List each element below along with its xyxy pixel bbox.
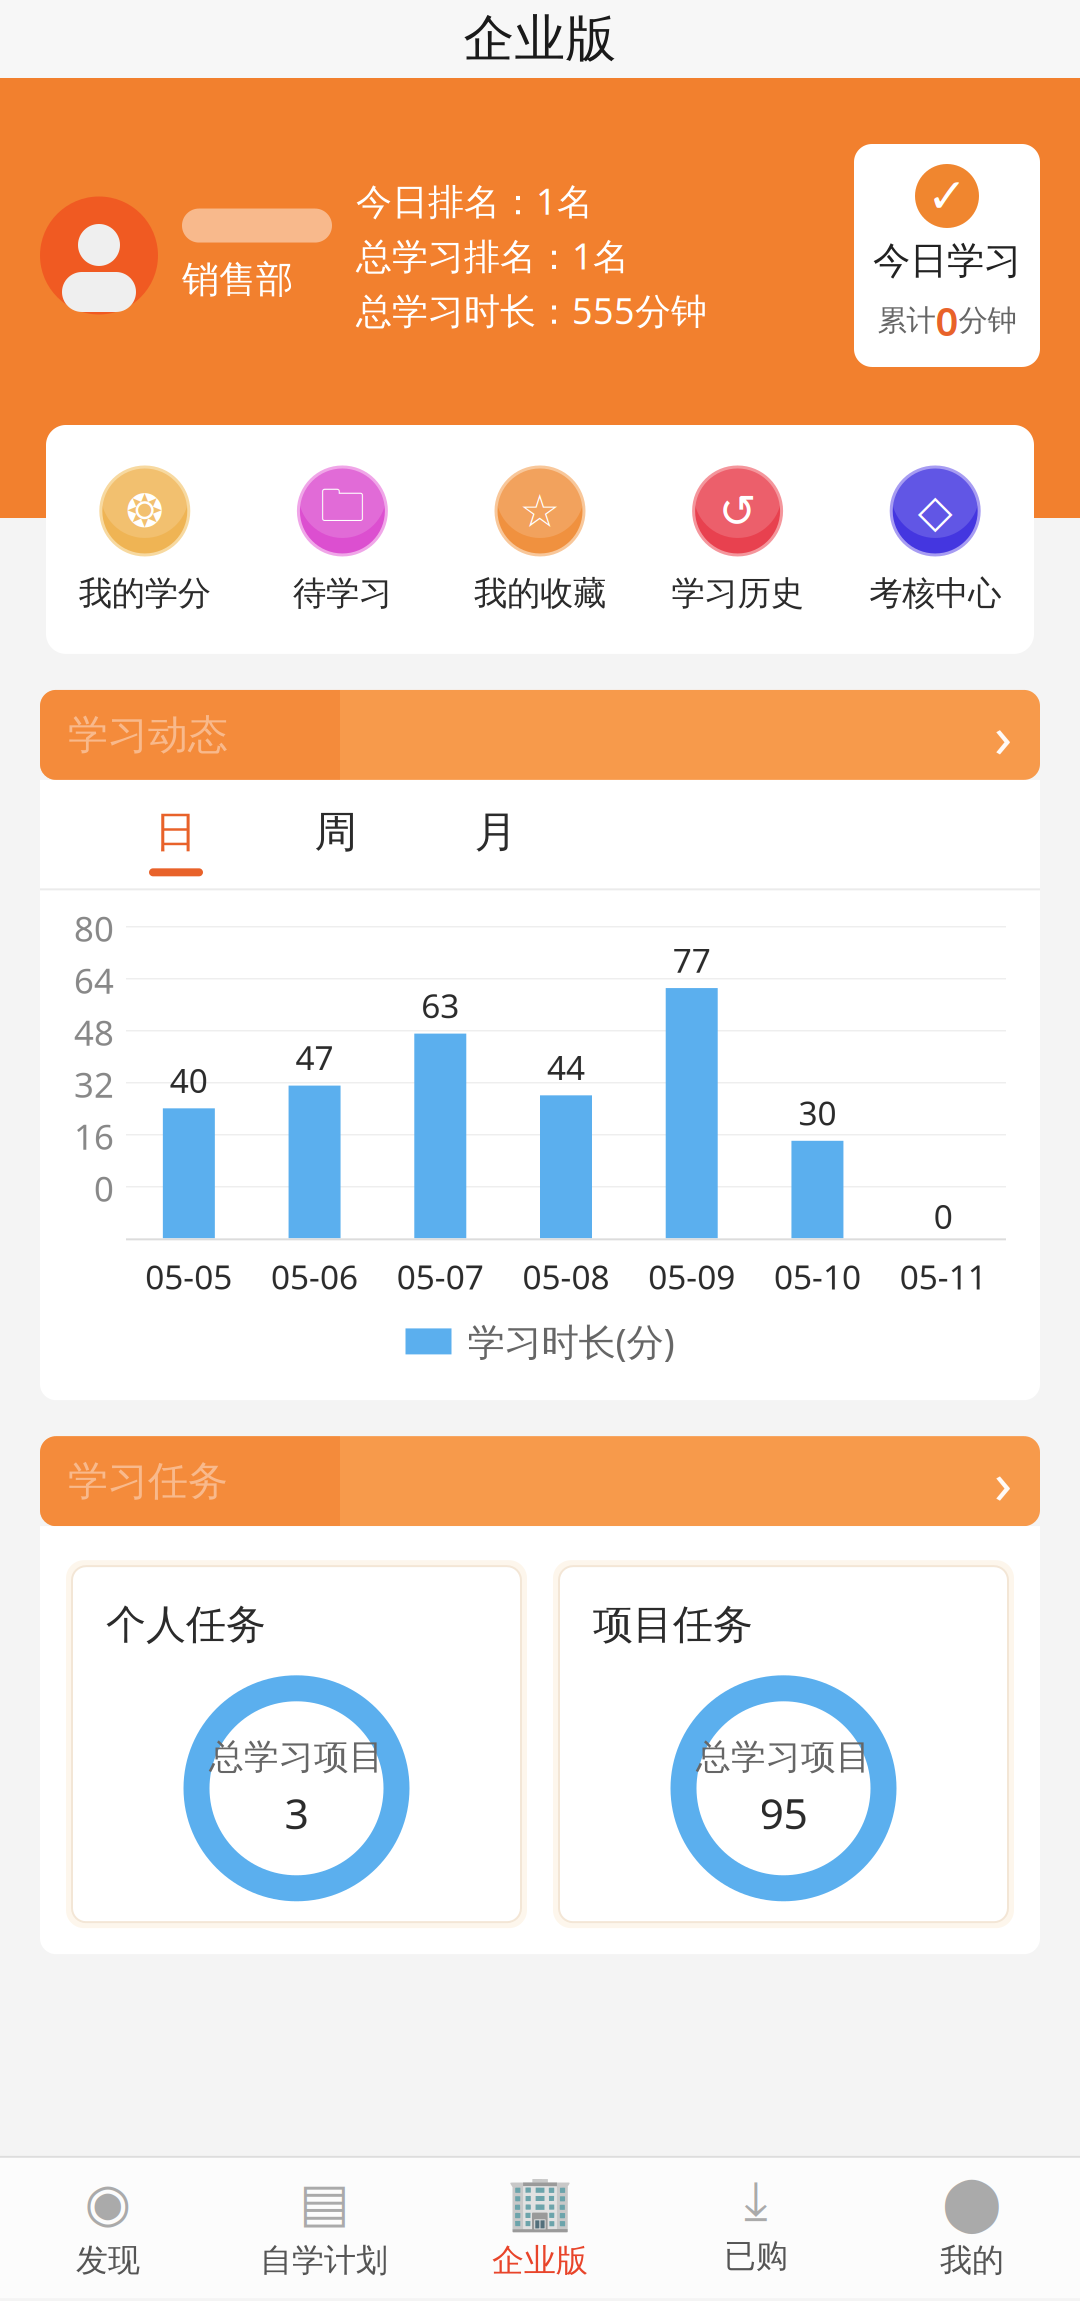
staticText: ▤: [299, 2172, 349, 2233]
staticText: 总学习项目: [209, 1736, 384, 1778]
staticText: ⬤: [942, 2172, 1002, 2233]
staticText: 16: [74, 1113, 114, 1159]
button[interactable]: 个人任务: [66, 1560, 527, 1928]
staticText: 考核中心: [869, 573, 1001, 614]
staticText: 日: [154, 806, 197, 858]
button[interactable]: 学习任务: [40, 1436, 1040, 1526]
staticText: 我的学分: [79, 573, 211, 614]
staticText: 80: [74, 905, 114, 951]
staticText: 总学习项目: [696, 1736, 871, 1778]
staticText: 🗀: [320, 473, 365, 548]
staticText: 05-09: [648, 1254, 735, 1299]
staticText: 销售部: [182, 257, 293, 302]
staticText: 05-10: [774, 1254, 861, 1299]
staticText: 待学习: [293, 573, 392, 614]
staticText: 今日排名：1名: [356, 177, 593, 225]
button[interactable]: ⤓: [648, 2176, 864, 2276]
staticText: 32: [74, 1061, 114, 1107]
staticText: 学习时长(分): [467, 1317, 674, 1366]
staticText: 累计: [877, 302, 935, 338]
button[interactable]: ☆: [441, 465, 639, 614]
staticText: 学习任务: [68, 1457, 228, 1506]
staticText: 0: [94, 1165, 114, 1211]
staticText: ↺: [719, 485, 757, 537]
staticText: 个人任务: [106, 1600, 266, 1649]
button[interactable]: ◇: [836, 465, 1034, 614]
button[interactable]: ◉: [0, 2172, 216, 2280]
staticText: 0: [935, 294, 958, 347]
button[interactable]: ❂: [46, 465, 244, 614]
staticText: ◇: [918, 485, 953, 537]
button[interactable]: ⬤: [864, 2172, 1080, 2280]
button[interactable]: 项目任务: [553, 1560, 1014, 1928]
staticText: 44: [547, 1045, 585, 1089]
staticText: 分钟: [958, 302, 1016, 338]
staticText: 已购: [724, 2236, 788, 2276]
button[interactable]: 月: [416, 806, 576, 888]
button[interactable]: 🏢: [432, 2172, 648, 2280]
staticText: 05-08: [522, 1254, 609, 1299]
staticText: 05-06: [271, 1254, 358, 1299]
staticText: 学习动态: [880, 710, 1040, 759]
staticText: 今日学习: [873, 238, 1021, 284]
staticText: 63: [421, 983, 459, 1028]
staticText: 学习动态: [68, 710, 228, 759]
button[interactable]: ↺: [639, 465, 836, 614]
button[interactable]: 学习动态: [40, 690, 1040, 780]
button[interactable]: 日: [96, 806, 256, 888]
staticText: 我的: [940, 2241, 1004, 2280]
staticText: 学习历史: [672, 573, 804, 614]
staticText: ❂: [126, 485, 164, 537]
staticText: 项目任务: [593, 1600, 753, 1649]
staticText: ›: [994, 1442, 1012, 1520]
staticText: 0: [934, 1194, 953, 1238]
staticText: 总学习排名：1名: [356, 232, 629, 279]
staticText: 企业版: [492, 2241, 588, 2280]
button[interactable]: 周: [256, 806, 416, 888]
staticText: 🏢: [507, 2172, 573, 2233]
button[interactable]: 🗀: [244, 465, 441, 614]
staticText: ⤓: [744, 2176, 768, 2228]
staticText: 企业版: [463, 8, 616, 70]
button[interactable]: ▤: [216, 2172, 432, 2280]
staticText: 95: [759, 1784, 807, 1841]
staticText: ☆: [519, 485, 560, 537]
staticText: 05-07: [397, 1254, 484, 1299]
staticText: 发现: [76, 2241, 140, 2280]
staticText: 77: [673, 938, 711, 982]
staticText: 47: [296, 1035, 334, 1080]
staticText: 总学习时长：555分钟: [356, 286, 707, 334]
staticText: 我的收藏: [474, 573, 606, 614]
staticText: 48: [74, 1009, 114, 1055]
staticText: ◉: [84, 2172, 131, 2233]
staticText: 3: [284, 1784, 308, 1841]
button[interactable]: ✓: [854, 144, 1040, 367]
staticText: 学习任务: [880, 1457, 1040, 1506]
staticText: ›: [994, 696, 1012, 774]
staticText: 周: [314, 806, 357, 858]
staticText: 月: [474, 806, 517, 858]
staticText: 30: [798, 1091, 836, 1135]
staticText: 40: [170, 1058, 208, 1102]
staticText: ✓: [927, 169, 967, 223]
staticText: 自学计划: [260, 2241, 388, 2280]
staticText: 05-11: [900, 1254, 987, 1299]
staticText: 05-05: [145, 1254, 232, 1299]
staticText: 64: [74, 957, 114, 1003]
